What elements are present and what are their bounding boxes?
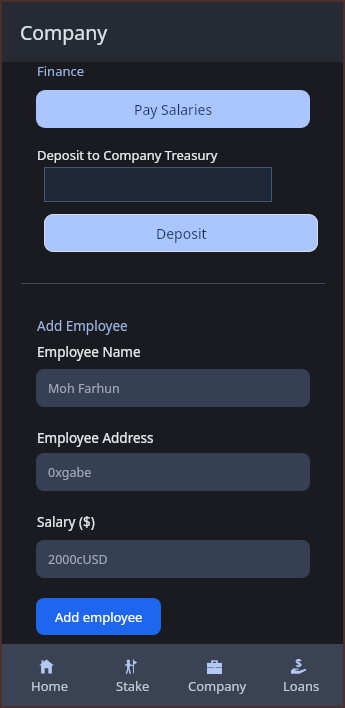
- staticText: Employee Address: [37, 429, 154, 447]
- button[interactable]: Add employee: [36, 598, 161, 635]
- staticText: 0xgabe: [48, 464, 92, 481]
- button[interactable]: 2000cUSD: [36, 540, 310, 578]
- staticText: Add Employee: [37, 317, 128, 335]
- staticText: Add employee: [55, 608, 143, 626]
- button[interactable]: Loans: [259, 653, 343, 698]
- staticText: Pay Salaries: [134, 100, 213, 119]
- button[interactable]: Pay Salaries: [36, 90, 310, 128]
- button[interactable]: Deposit: [44, 214, 318, 252]
- staticText: Company: [188, 677, 247, 695]
- staticText: Employee Name: [37, 343, 141, 361]
- button[interactable]: Home: [8, 653, 91, 698]
- staticText: Company: [20, 19, 108, 46]
- staticText: Home: [31, 677, 68, 695]
- button[interactable]: Stake: [91, 653, 175, 698]
- button[interactable]: Moh Farhun: [36, 369, 310, 407]
- button[interactable]: 0xgabe: [36, 453, 310, 491]
- staticText: Deposit: [156, 224, 207, 243]
- staticText: Salary ($): [37, 513, 95, 531]
- staticText: Loans: [283, 677, 320, 695]
- button[interactable]: Company: [175, 653, 259, 698]
- staticText: Stake: [116, 677, 150, 695]
- staticText: 2000cUSD: [48, 551, 108, 568]
- staticText: Moh Farhun: [48, 380, 120, 397]
- button[interactable]: [44, 167, 272, 202]
- staticText: Deposit to Company Treasury: [37, 146, 218, 164]
- staticText: Finance: [37, 62, 85, 80]
